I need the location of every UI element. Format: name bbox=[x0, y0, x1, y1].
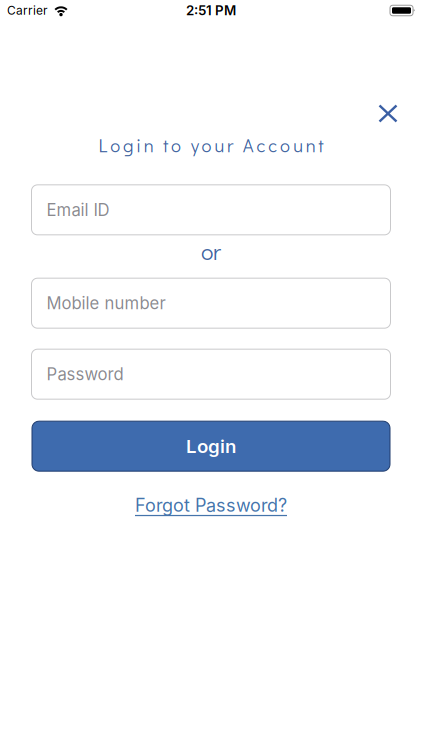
staticText: Mobile number bbox=[46, 293, 165, 313]
button[interactable]: Forgot Password? bbox=[135, 495, 287, 516]
button[interactable]: Mobile number bbox=[31, 278, 390, 328]
staticText: 2:51 PM bbox=[186, 3, 236, 18]
staticText: Login bbox=[186, 435, 236, 457]
staticText: Carrier bbox=[7, 3, 48, 18]
button[interactable]: Login bbox=[32, 421, 390, 471]
staticText: Forgot Password? bbox=[135, 495, 287, 516]
button[interactable]: Email ID bbox=[31, 185, 390, 235]
button[interactable]: Password bbox=[31, 349, 390, 399]
staticText: Password bbox=[46, 364, 123, 384]
staticText: or bbox=[201, 236, 221, 266]
staticText: Email ID bbox=[46, 200, 109, 220]
staticText: Login to your Account bbox=[98, 133, 323, 157]
button[interactable] bbox=[379, 105, 397, 122]
